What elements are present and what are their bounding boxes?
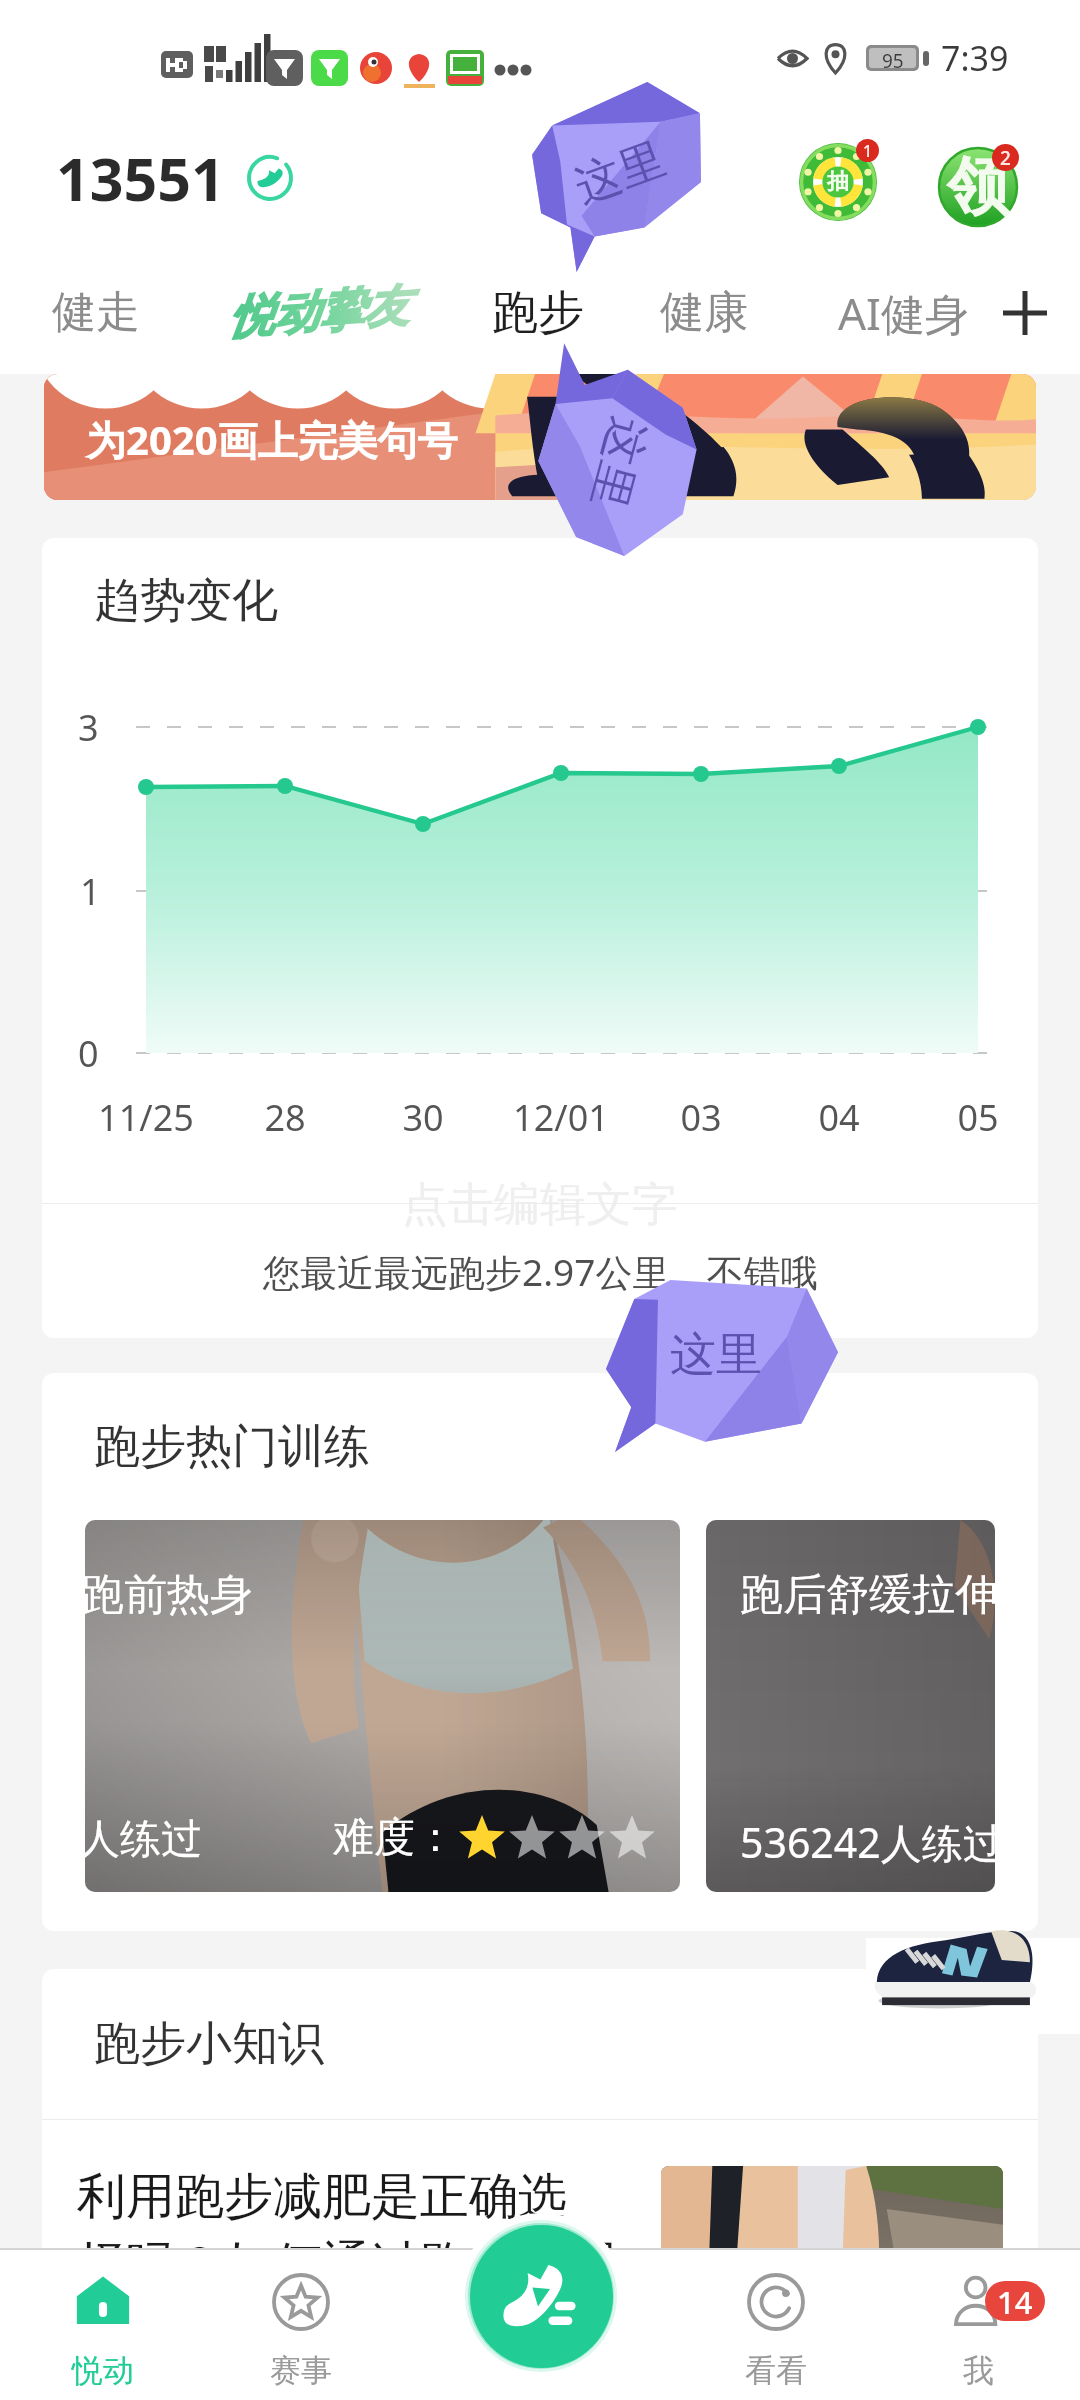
staticText: 跑步小知识 bbox=[94, 2015, 324, 2073]
staticText: 13551 bbox=[56, 138, 225, 218]
staticText: 领 bbox=[947, 148, 1009, 226]
staticText: 难度： bbox=[333, 1812, 456, 1864]
button[interactable]: 看看 bbox=[686, 2248, 866, 2400]
staticText: 健康 bbox=[660, 285, 748, 340]
staticText: 12/01 bbox=[491, 1093, 631, 1142]
button[interactable]: 跑步 bbox=[492, 284, 584, 342]
staticText: 7:39 bbox=[941, 35, 1009, 81]
staticText: 您最近最远跑步2.97公里 不错哦 bbox=[263, 1246, 818, 1297]
staticText: 1 bbox=[80, 867, 101, 916]
staticText: 悦动 bbox=[72, 2351, 134, 2390]
staticText: 跑步热门训练 bbox=[94, 1418, 370, 1476]
staticText: 11/25 bbox=[76, 1093, 216, 1142]
staticText: 这里 bbox=[567, 130, 673, 216]
button[interactable]: 为2020画上完美句号 bbox=[44, 374, 1036, 500]
button[interactable]: 赛事 bbox=[211, 2248, 391, 2400]
button[interactable]: 抽 bbox=[799, 139, 879, 221]
staticText: 趋势变化 bbox=[94, 572, 278, 630]
staticText: 3 bbox=[78, 703, 99, 752]
staticText: 赛事 bbox=[270, 2351, 332, 2390]
staticText: 14 bbox=[997, 2281, 1033, 2321]
button[interactable]: AI健身 bbox=[838, 283, 970, 343]
staticText: 05 bbox=[908, 1093, 1038, 1142]
button[interactable]: 跑后舒缓拉伸 bbox=[706, 1520, 995, 1892]
staticText: 这里 bbox=[578, 411, 658, 515]
staticText: 1 bbox=[863, 140, 873, 162]
button[interactable]: Start running bbox=[470, 2225, 613, 2368]
staticText: 04 bbox=[769, 1093, 909, 1142]
button[interactable]: 领 bbox=[939, 144, 1019, 226]
staticText: 536242人练过 bbox=[740, 1814, 995, 1870]
staticText: 为2020画上完美句号 bbox=[86, 412, 458, 467]
button[interactable]: Add tab bbox=[996, 284, 1054, 342]
button[interactable]: 悦动 bbox=[13, 2248, 193, 2400]
staticText: 0 bbox=[78, 1029, 99, 1078]
button[interactable]: 跑前热身 bbox=[85, 1520, 680, 1892]
staticText: 看看 bbox=[745, 2351, 807, 2390]
button[interactable]: 健康 bbox=[660, 285, 748, 340]
staticText: 95 bbox=[882, 48, 904, 68]
button[interactable]: 健走 bbox=[52, 285, 140, 340]
staticText: 30 bbox=[353, 1093, 493, 1142]
staticText: 2 bbox=[1000, 145, 1011, 171]
staticText: 28 bbox=[215, 1093, 355, 1142]
staticText: 人练过 bbox=[85, 1814, 202, 1866]
staticText: 健走 bbox=[52, 285, 140, 340]
button[interactable]: 我 bbox=[888, 2248, 1068, 2400]
staticText: 跑前热身 bbox=[85, 1568, 253, 1622]
staticText: 点击编辑文字 bbox=[402, 1176, 678, 1234]
staticText: 跑后舒缓拉伸 bbox=[740, 1568, 995, 1622]
staticText: 抽 bbox=[827, 168, 849, 196]
staticText: AI健身 bbox=[838, 283, 970, 343]
staticText: 利用跑步减肥是正确选 择吗？如何通过跑步减肥 bbox=[77, 2166, 645, 2295]
staticText: 这里 bbox=[670, 1326, 762, 1384]
staticText: 跑步 bbox=[492, 284, 584, 342]
staticText: 03 bbox=[631, 1093, 771, 1142]
staticText: 悦动挚友 bbox=[226, 278, 410, 347]
button[interactable]: 悦动挚友 bbox=[228, 284, 408, 341]
staticText: 我 bbox=[963, 2351, 994, 2390]
